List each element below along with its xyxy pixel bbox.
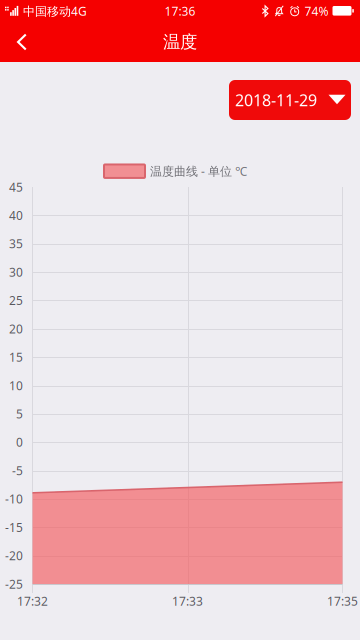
staticText: -15 [5, 519, 23, 535]
staticText: 25 [9, 292, 23, 308]
button[interactable]: Back [0, 22, 44, 62]
staticText: 40 [9, 207, 23, 223]
staticText: 温度曲线 - 单位 ℃ [150, 163, 247, 179]
staticText: 10 [9, 377, 23, 393]
staticText: 0 [16, 434, 23, 450]
staticText: -25 [5, 576, 23, 592]
staticText: 2018-11-29 [235, 89, 317, 111]
staticText: 17:35 [327, 593, 358, 609]
staticText: -5 [12, 463, 23, 478]
staticText: 温度 [163, 31, 197, 53]
staticText: 74% [304, 3, 328, 19]
staticText: 17:32 [17, 593, 48, 609]
staticText: 17:36 [164, 3, 195, 19]
staticText: 30 [9, 264, 23, 280]
staticText: 17:33 [172, 593, 203, 609]
staticText: 45 [9, 179, 23, 195]
button[interactable]: 2018-11-29 [229, 80, 351, 120]
staticText: 5 [16, 406, 23, 422]
staticText: -20 [5, 548, 23, 564]
staticText: -10 [5, 491, 23, 507]
staticText: 中国移动4G [23, 3, 87, 19]
staticText: 15 [9, 349, 23, 365]
staticText: 20 [9, 321, 23, 337]
staticText: 35 [9, 236, 23, 252]
